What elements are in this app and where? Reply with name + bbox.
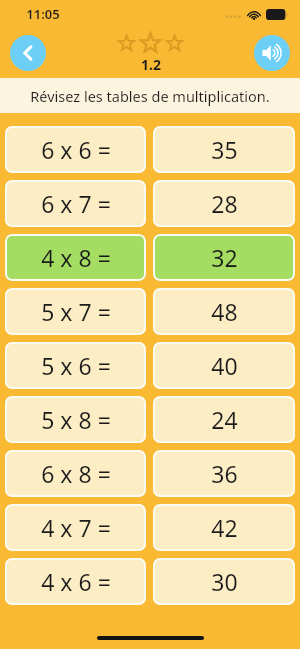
button[interactable]: 32 xyxy=(153,234,295,281)
staticText: 6 x 7 = xyxy=(41,188,111,219)
staticText: 5 x 7 = xyxy=(41,296,111,327)
staticText: 11:05 xyxy=(26,5,60,23)
button[interactable]: 4 x 6 = xyxy=(5,558,146,605)
button[interactable]: 28 xyxy=(153,180,295,227)
staticText: 32 xyxy=(211,242,238,273)
button[interactable]: 30 xyxy=(153,558,295,605)
button[interactable]: 6 x 8 = xyxy=(5,450,146,497)
staticText: 5 x 8 = xyxy=(41,404,111,435)
button[interactable]: 42 xyxy=(153,504,295,551)
staticText: 4 x 7 = xyxy=(41,512,111,543)
staticText: 48 xyxy=(211,296,238,327)
button[interactable]: 24 xyxy=(153,396,295,443)
staticText: 4 x 6 = xyxy=(41,566,111,597)
staticText: 4 x 8 = xyxy=(41,242,111,273)
staticText: 36 xyxy=(211,458,238,489)
button[interactable]: 35 xyxy=(153,126,295,173)
button[interactable]: 5 x 8 = xyxy=(5,396,146,443)
staticText: 42 xyxy=(211,512,238,543)
staticText: 30 xyxy=(211,566,238,597)
staticText: 5 x 6 = xyxy=(41,350,111,381)
button[interactable]: 4 x 7 = xyxy=(5,504,146,551)
button[interactable]: 4 x 8 = xyxy=(5,234,146,281)
button[interactable]: 36 xyxy=(153,450,295,497)
staticText: 40 xyxy=(211,350,238,381)
staticText: 1.2 xyxy=(141,55,161,74)
button[interactable]: 5 x 6 = xyxy=(5,342,146,389)
staticText: Révisez les tables de multiplication. xyxy=(30,86,270,106)
staticText: 6 x 6 = xyxy=(41,134,111,165)
staticText: 24 xyxy=(211,404,238,435)
staticText: 6 x 8 = xyxy=(41,458,111,489)
button[interactable]: 40 xyxy=(153,342,295,389)
staticText: 28 xyxy=(211,188,238,219)
staticText: 35 xyxy=(211,134,238,165)
button[interactable]: Back xyxy=(10,35,46,71)
button[interactable]: 5 x 7 = xyxy=(5,288,146,335)
button[interactable]: 6 x 6 = xyxy=(5,126,146,173)
button[interactable]: Sound xyxy=(254,35,290,71)
button[interactable]: 6 x 7 = xyxy=(5,180,146,227)
button[interactable]: 48 xyxy=(153,288,295,335)
